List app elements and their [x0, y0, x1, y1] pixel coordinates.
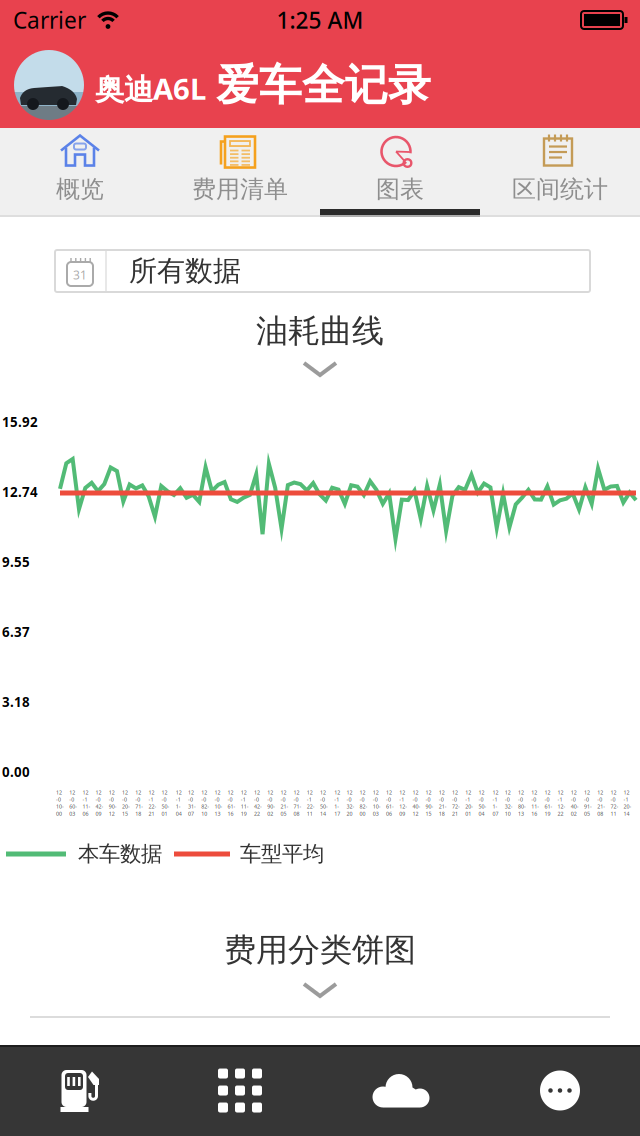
staticText: 12 -0 10- 00 — [56, 789, 64, 817]
staticText: 12 -0 71- 18 — [135, 789, 143, 817]
staticText: 12 -0 10- 13 — [214, 789, 222, 817]
staticText: 12 -0 61- 06 — [386, 789, 394, 817]
button[interactable]: 车辆头像 — [14, 50, 84, 120]
staticText: 9.55 — [2, 553, 30, 571]
staticText: 15.92 — [2, 413, 38, 431]
staticText: 12 -1 20- 14 — [624, 789, 632, 817]
staticText: 12 -0 91- 05 — [584, 789, 592, 817]
staticText: 12 -0 50- 14 — [320, 789, 328, 817]
staticText: 12 -0 50- 04 — [478, 789, 486, 817]
staticText: 12 -0 10- 03 — [373, 789, 381, 817]
staticText: 12 -1 11- 06 — [82, 789, 90, 817]
staticText: 12 -0 31- 07 — [188, 789, 196, 817]
staticText: 12 -1 20- 01 — [465, 789, 473, 817]
staticText: 12 -1 22- 11 — [307, 789, 315, 817]
button[interactable]: 云同步 — [320, 1045, 480, 1136]
staticText: 1:25 AM — [276, 5, 363, 35]
staticText: 车型平均 — [240, 841, 324, 867]
staticText: 12 -0 20- 15 — [122, 789, 130, 817]
staticText: 12 -0 61- 19 — [544, 789, 552, 817]
staticText: 图表 — [376, 174, 424, 204]
staticText: 12 -1 1- 04 — [176, 789, 182, 817]
staticText: 12.74 — [2, 483, 38, 501]
button[interactable]: 更多 — [480, 1045, 640, 1136]
staticText: 爱车全记录 — [216, 59, 431, 111]
staticText: 12 -0 32- 20 — [346, 789, 354, 817]
staticText: 油耗曲线 — [256, 311, 384, 351]
staticText: 概览 — [56, 174, 104, 204]
button[interactable]: 31 — [55, 250, 590, 292]
staticText: 费用分类饼图 — [224, 930, 416, 970]
staticText: 12 -1 11- 19 — [241, 789, 249, 817]
staticText: 12 -0 21- 05 — [280, 789, 288, 817]
button[interactable]: 加油记录 — [0, 1045, 160, 1136]
button[interactable]: 全部功能 — [160, 1045, 320, 1136]
staticText: 12 -1 12- 09 — [399, 789, 407, 817]
staticText: 12 -0 11- 16 — [531, 789, 539, 817]
staticText: 12 -0 42- 09 — [96, 789, 104, 817]
staticText: 12 -0 71- 08 — [294, 789, 302, 817]
staticText: 费用清单 — [192, 174, 288, 204]
staticText: 31 — [73, 267, 87, 283]
staticText: 奥迪A6L — [95, 69, 206, 108]
staticText: 12 -0 40- 12 — [412, 789, 420, 817]
button[interactable]: 收起油耗曲线 — [292, 351, 348, 387]
staticText: 12 -0 42- 22 — [254, 789, 262, 817]
staticText: 12 -0 90- 15 — [426, 789, 434, 817]
staticText: 12 -0 72- 11 — [610, 789, 618, 817]
staticText: 12 -1 22- 21 — [148, 789, 156, 817]
staticText: 本车数据 — [78, 841, 162, 867]
staticText: 12 -0 80- 13 — [518, 789, 526, 817]
staticText: 12 -1 1- 07 — [493, 789, 499, 817]
staticText: 12 -0 50- 01 — [162, 789, 170, 817]
staticText: 12 -0 82- 00 — [360, 789, 368, 817]
staticText: 6.37 — [2, 623, 30, 641]
button[interactable]: 概览 — [0, 128, 160, 217]
staticText: 12 -0 40- 02 — [571, 789, 579, 817]
button[interactable]: 图表 — [320, 128, 480, 217]
staticText: 12 -0 82- 10 — [201, 789, 209, 817]
staticText: 12 -0 72- 21 — [452, 789, 460, 817]
staticText: 12 -0 60- 03 — [69, 789, 77, 817]
staticText: 12 -1 1- 17 — [334, 789, 340, 817]
staticText: 12 -0 21- 18 — [439, 789, 447, 817]
button[interactable]: 费用清单 — [160, 128, 320, 217]
staticText: 12 -0 21- 08 — [597, 789, 605, 817]
staticText: 12 -0 90- 02 — [267, 789, 275, 817]
staticText: 区间统计 — [512, 174, 608, 204]
staticText: 3.18 — [2, 693, 30, 711]
button[interactable]: 区间统计 — [480, 128, 640, 217]
staticText: 12 -1 12- 22 — [558, 789, 566, 817]
staticText: 12 -0 32- 10 — [505, 789, 513, 817]
button[interactable]: 展开费用分类饼图 — [292, 972, 348, 1008]
staticText: 12 -0 61- 16 — [228, 789, 236, 817]
staticText: Carrier — [13, 5, 86, 35]
staticText: 0.00 — [2, 763, 30, 781]
staticText: 12 -0 90- 12 — [109, 789, 117, 817]
staticText: 所有数据 — [129, 254, 241, 288]
